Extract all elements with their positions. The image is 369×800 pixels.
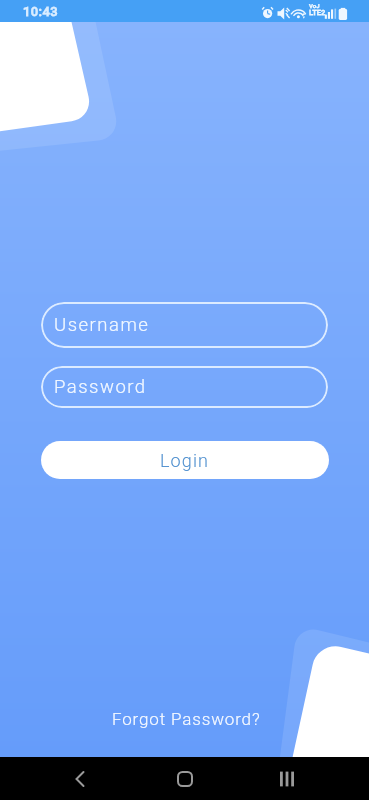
staticText: Login (160, 450, 210, 471)
button[interactable]: Password (41, 366, 328, 408)
button[interactable]: Username (41, 302, 328, 348)
button[interactable]: Forgot Password? (104, 704, 269, 734)
button[interactable]: Login (41, 441, 329, 479)
staticText: 10:43 (23, 4, 59, 19)
staticText: Password (54, 376, 147, 398)
staticText: VoJ (309, 2, 320, 9)
staticText: Username (54, 314, 150, 336)
button[interactable]: Home (168, 762, 202, 796)
button[interactable]: Back (63, 762, 97, 796)
staticText: Forgot Password? (112, 709, 261, 729)
staticText: LTE2 (309, 8, 326, 17)
button[interactable]: Recent apps (270, 762, 304, 796)
